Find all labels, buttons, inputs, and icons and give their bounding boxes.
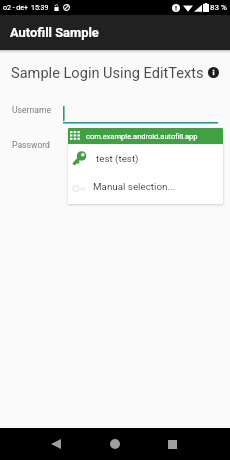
staticText: 15:39: [31, 4, 49, 12]
staticText: 83 %: [210, 3, 227, 12]
staticText: Password: [12, 140, 50, 150]
button[interactable]: test (test): [68, 144, 223, 172]
staticText: Autofill Sample: [10, 25, 99, 40]
staticText: Manual selection...: [93, 181, 176, 192]
staticText: o2 - de+: [3, 4, 28, 12]
staticText: Sample Login Using EditTexts: [11, 64, 204, 81]
button[interactable]: Home: [102, 431, 128, 457]
staticText: Username: [12, 105, 51, 115]
staticText: test (test): [96, 153, 139, 164]
button[interactable]: com.example.android.autofill.app: [68, 128, 223, 144]
staticText: com.example.android.autofill.app: [86, 132, 198, 141]
button[interactable]: Manual selection...: [68, 172, 223, 200]
button[interactable]: Back: [43, 431, 69, 457]
button[interactable]: Info: [208, 67, 219, 78]
button[interactable]: Recents: [159, 431, 185, 457]
